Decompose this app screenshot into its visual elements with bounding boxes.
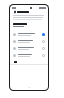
button[interactable] (10, 45, 48, 52)
button[interactable]: Learn more (14, 61, 17, 63)
button[interactable]: Menu (13, 10, 16, 13)
button[interactable] (10, 38, 48, 45)
button[interactable] (10, 52, 48, 59)
button[interactable] (10, 31, 48, 38)
